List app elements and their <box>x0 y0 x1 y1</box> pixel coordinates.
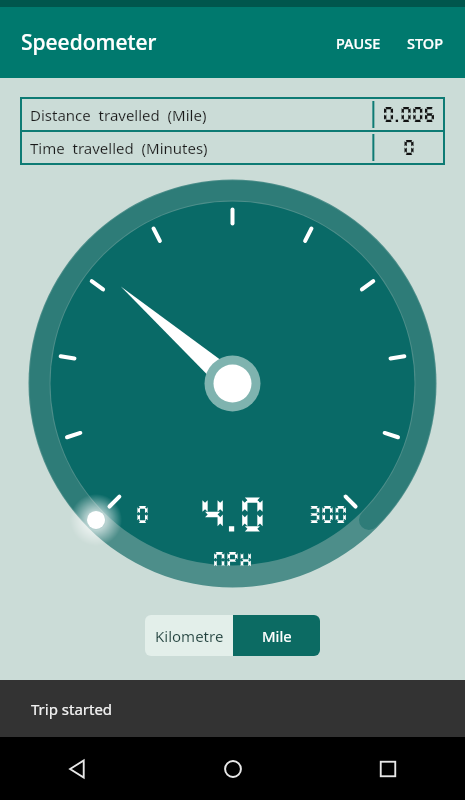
staticText: PAUSE <box>336 33 381 53</box>
button[interactable]: Mile <box>233 615 320 656</box>
staticText: Kilometre <box>155 626 224 646</box>
button[interactable]: Kilometre <box>145 615 233 656</box>
staticText: Distance travelled (Mile) <box>30 105 207 125</box>
button[interactable]: Recents <box>310 737 465 800</box>
staticText: Speedometer <box>21 28 157 57</box>
button[interactable]: PAUSE <box>323 21 394 65</box>
button[interactable]: STOP <box>394 21 465 65</box>
staticText: Trip started <box>31 699 113 719</box>
staticText: STOP <box>407 33 444 53</box>
button[interactable]: Home <box>155 737 310 800</box>
staticText: Time travelled (Minutes) <box>30 138 208 158</box>
button[interactable]: Back <box>0 737 155 800</box>
staticText: Mile <box>262 626 292 646</box>
